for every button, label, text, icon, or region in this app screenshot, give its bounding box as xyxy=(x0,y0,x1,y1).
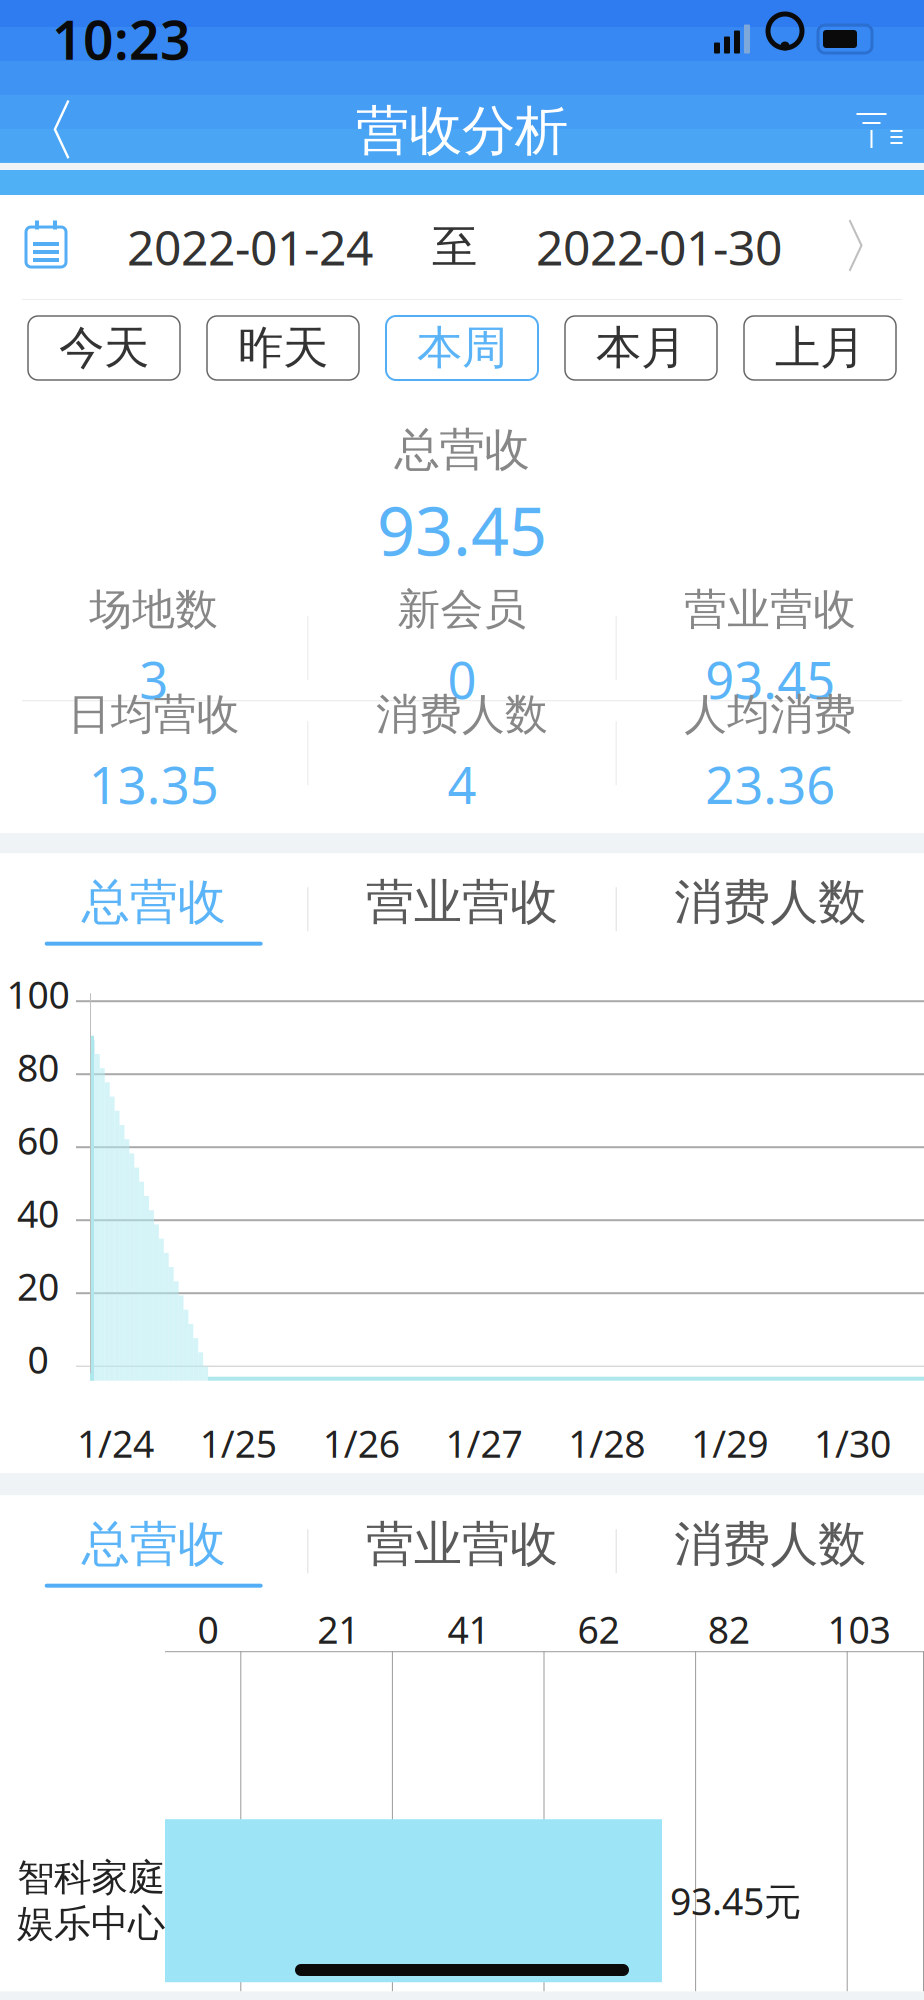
staticText: 1/25 xyxy=(200,1418,277,1468)
staticText: 1/29 xyxy=(691,1418,768,1468)
staticText: 消费人数 xyxy=(674,1515,866,1574)
staticText: 4 xyxy=(447,751,476,818)
staticText: 场地数 xyxy=(89,583,218,636)
staticText: 营业营收 xyxy=(684,583,856,636)
staticText: 营业营收 xyxy=(366,873,558,932)
button[interactable]: 今天 xyxy=(28,316,180,380)
staticText: 103 xyxy=(827,1604,890,1654)
button[interactable]: 本周 xyxy=(386,316,538,380)
staticText: 新会员 xyxy=(397,583,526,636)
staticText: 2022-01-24 xyxy=(127,215,373,279)
staticText: 至 xyxy=(432,219,477,275)
button[interactable]: 上月 xyxy=(744,316,896,380)
staticText: 今天 xyxy=(59,320,149,376)
button[interactable]: 总营收 xyxy=(0,855,307,964)
staticText: 上月 xyxy=(775,320,865,376)
staticText: 82 xyxy=(708,1604,750,1654)
button[interactable]: 营业营收 xyxy=(308,855,616,964)
staticText: 62 xyxy=(578,1604,620,1654)
staticText: 21 xyxy=(317,1604,359,1654)
staticText: 总营收 xyxy=(82,873,226,932)
staticText: 0 xyxy=(447,646,476,713)
staticText: 营业营收 xyxy=(366,1515,558,1574)
staticText: 93.45元 xyxy=(670,1876,801,1925)
staticText: 0 xyxy=(27,1334,48,1384)
staticText: 40 xyxy=(17,1188,59,1238)
staticText: 20 xyxy=(17,1261,59,1311)
staticText: 〉 xyxy=(841,211,900,283)
button[interactable]: 营业营收 xyxy=(308,1497,616,1606)
staticText: 80 xyxy=(17,1042,59,1092)
staticText: 100 xyxy=(6,969,69,1019)
staticText: 2022-01-30 xyxy=(536,215,782,279)
staticText: 23.36 xyxy=(705,751,835,818)
staticText: 93.45 xyxy=(377,486,547,574)
staticText: 人均消费 xyxy=(684,688,856,741)
staticText: 1/27 xyxy=(445,1418,522,1468)
button[interactable]: 2022-01-24 xyxy=(0,195,924,299)
staticText: 本月 xyxy=(596,320,686,376)
button[interactable]: Back xyxy=(0,85,90,177)
staticText: 本周 xyxy=(417,320,507,376)
staticText: 1/30 xyxy=(814,1418,891,1468)
button[interactable]: 消费人数 xyxy=(617,855,924,964)
staticText: 总营收 xyxy=(394,422,529,478)
staticText: 41 xyxy=(447,1604,489,1654)
staticText: 3 xyxy=(139,646,168,713)
button[interactable]: Filter xyxy=(834,85,924,177)
staticText: 昨天 xyxy=(238,320,328,376)
staticText: 60 xyxy=(17,1115,59,1165)
button[interactable]: 本月 xyxy=(565,316,717,380)
staticText: 1/28 xyxy=(568,1418,645,1468)
staticText: 日均营收 xyxy=(68,688,240,741)
button[interactable]: 总营收 xyxy=(0,1497,307,1606)
staticText: 1/26 xyxy=(323,1418,400,1468)
staticText: 10:23 xyxy=(52,4,191,74)
staticText: 智科家庭娱乐中心 xyxy=(17,1855,165,1947)
staticText: 13.35 xyxy=(89,751,219,818)
staticText: 消费人数 xyxy=(376,688,548,741)
staticText: 总营收 xyxy=(82,1515,226,1574)
button[interactable]: 昨天 xyxy=(207,316,359,380)
staticText: 1/24 xyxy=(77,1418,154,1468)
staticText: 消费人数 xyxy=(674,873,866,932)
staticText: 93.45 xyxy=(705,646,835,713)
staticText: 营收分析 xyxy=(356,98,568,164)
staticText: 〈 xyxy=(11,90,78,172)
button[interactable]: 消费人数 xyxy=(617,1497,924,1606)
staticText: 0 xyxy=(198,1604,219,1654)
